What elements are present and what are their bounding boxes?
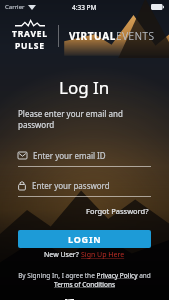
- staticText: Forgot Password?: [86, 206, 149, 216]
- other: Email: [18, 152, 27, 159]
- button[interactable]: LOGIN: [18, 230, 151, 248]
- staticText: New User?: [44, 250, 81, 260]
- button[interactable]: Email: [18, 148, 151, 167]
- staticText: TRAVEL: [12, 28, 48, 40]
- staticText: VIRTUAL: [69, 29, 116, 43]
- staticText: EVENTS: [116, 29, 155, 43]
- staticText: Log In: [59, 76, 110, 99]
- staticText: Please enter your email and password: [18, 108, 151, 130]
- button[interactable]: By Signing In, I agree the Privacy Polic…: [14, 271, 155, 289]
- staticText: LOGIN: [68, 233, 102, 245]
- staticText: PULSE: [15, 40, 45, 52]
- staticText: Enter your email ID: [33, 150, 106, 161]
- button[interactable]: Forgot Password?: [84, 204, 151, 218]
- button[interactable]: Password: [18, 178, 151, 197]
- other: Password: [18, 181, 26, 190]
- button[interactable]: New User?: [42, 248, 127, 262]
- staticText: Enter your password: [32, 180, 110, 191]
- staticText: Carrier: [5, 3, 25, 11]
- staticText: Sign Up Here: [81, 250, 125, 260]
- staticText: 4:33 PM: [72, 3, 97, 12]
